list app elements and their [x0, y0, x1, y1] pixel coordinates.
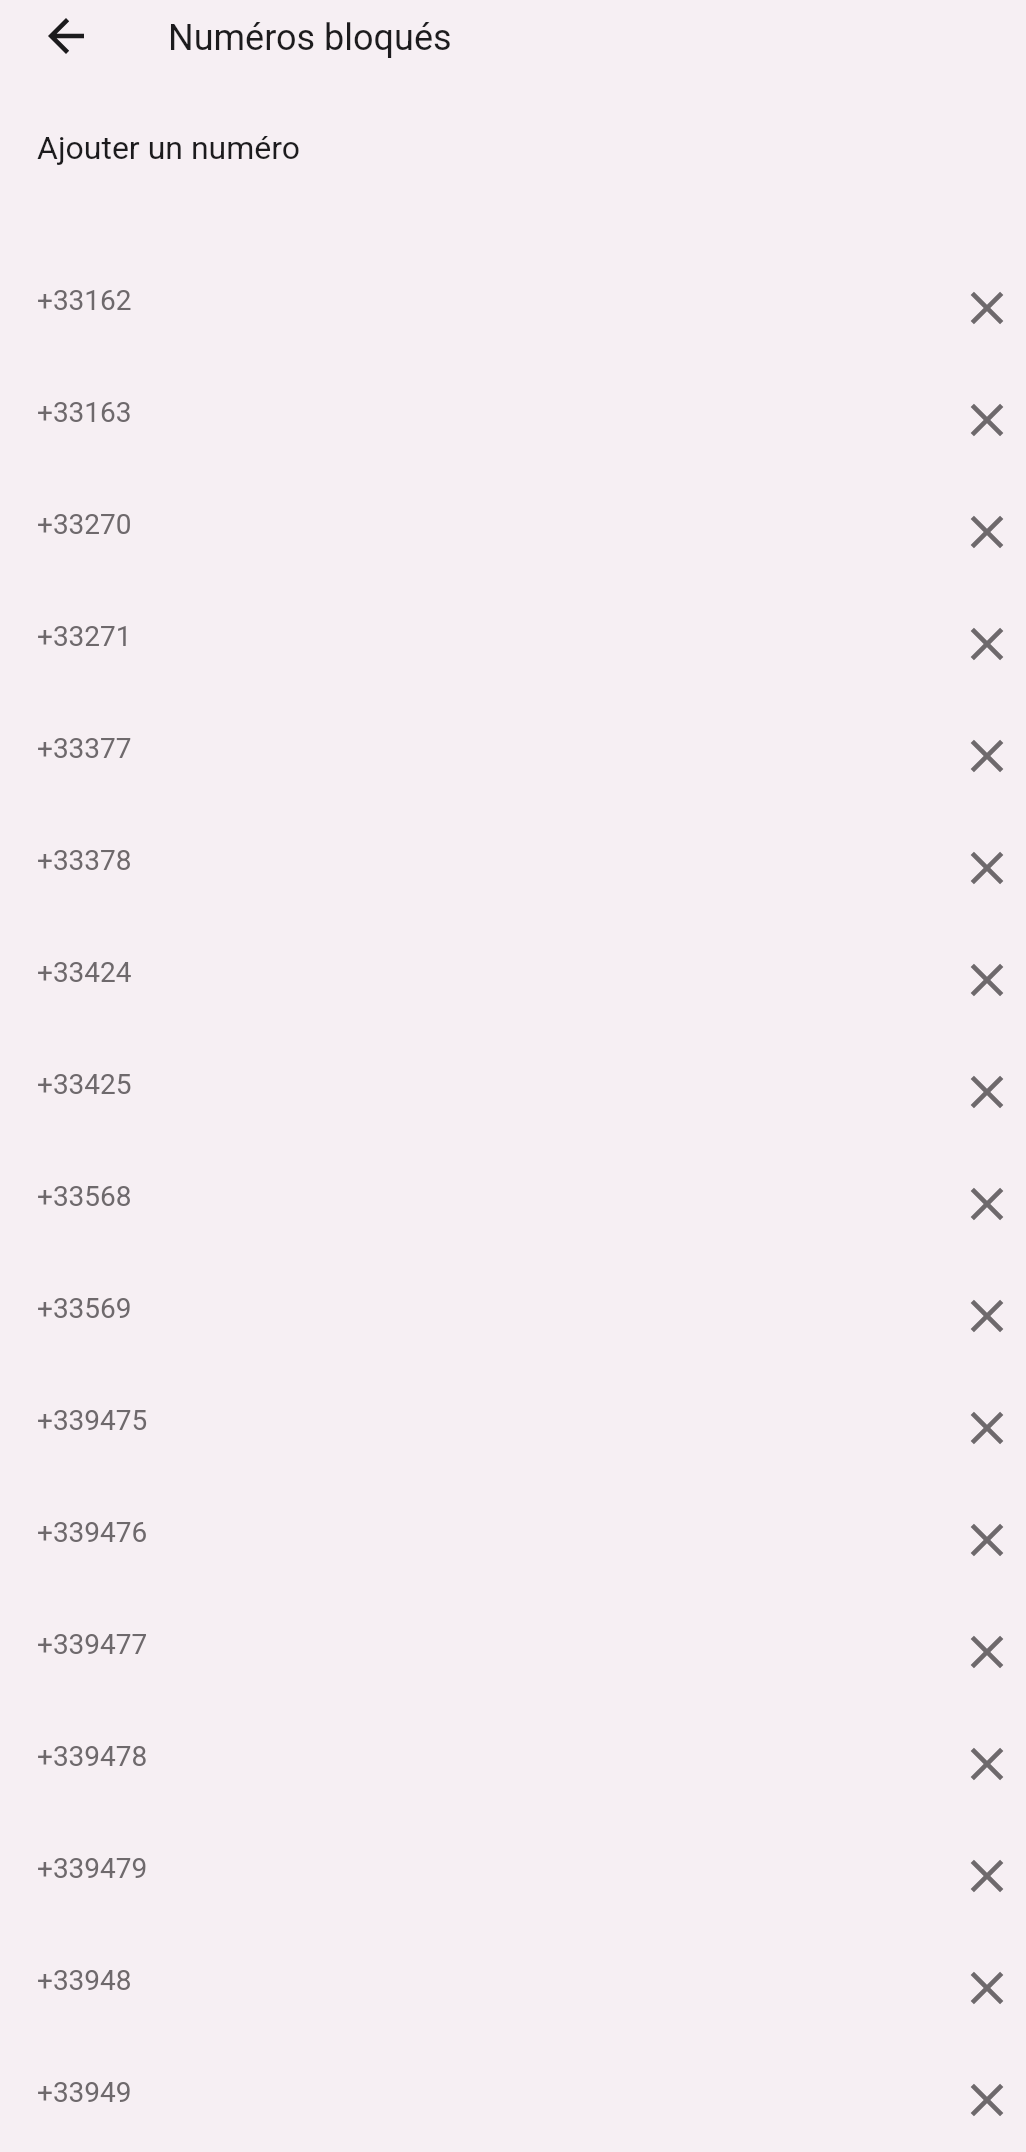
button[interactable]: +33568 — [0, 1148, 1026, 1260]
button[interactable]: +33569 — [0, 1260, 1026, 1372]
staticText: +339478 — [37, 1740, 148, 1773]
button[interactable]: +33377 — [0, 700, 1026, 812]
staticText: +33271 — [37, 620, 132, 653]
staticText: +33425 — [37, 1068, 132, 1101]
button[interactable]: +33270 — [0, 476, 1026, 588]
staticText: +33948 — [37, 1964, 132, 1997]
button[interactable]: +339477 — [0, 1596, 1026, 1708]
staticText: +33424 — [37, 956, 132, 989]
staticText: Ajouter un numéro — [37, 129, 301, 167]
staticText: +33569 — [37, 1292, 132, 1325]
button[interactable]: +33949 — [0, 2044, 1026, 2152]
button[interactable]: Débloquer +33949 — [959, 2072, 1015, 2128]
button[interactable]: Débloquer +33424 — [959, 952, 1015, 1008]
button[interactable]: Débloquer +33378 — [959, 840, 1015, 896]
button[interactable]: +33163 — [0, 364, 1026, 476]
button[interactable]: +33948 — [0, 1932, 1026, 2044]
staticText: +33378 — [37, 844, 132, 877]
button[interactable]: Débloquer +33377 — [959, 728, 1015, 784]
button[interactable]: Débloquer +339477 — [959, 1624, 1015, 1680]
staticText: +33568 — [37, 1180, 132, 1213]
staticText: +339477 — [37, 1628, 148, 1661]
staticText: +33377 — [37, 732, 132, 765]
button[interactable]: Débloquer +33162 — [959, 280, 1015, 336]
button[interactable]: Débloquer +33425 — [959, 1064, 1015, 1120]
staticText: +33162 — [37, 284, 132, 317]
staticText: +33949 — [37, 2076, 132, 2109]
button[interactable]: +33424 — [0, 924, 1026, 1036]
button[interactable]: Débloquer +33163 — [959, 392, 1015, 448]
staticText: +33163 — [37, 396, 132, 429]
button[interactable]: +33378 — [0, 812, 1026, 924]
button[interactable]: +33162 — [0, 252, 1026, 364]
button[interactable]: Débloquer +33948 — [959, 1960, 1015, 2016]
staticText: +339479 — [37, 1852, 148, 1885]
button[interactable]: +339479 — [0, 1820, 1026, 1932]
button[interactable]: +33271 — [0, 588, 1026, 700]
button[interactable]: +339476 — [0, 1484, 1026, 1596]
staticText: Numéros bloqués — [168, 17, 452, 59]
button[interactable]: Débloquer +339476 — [959, 1512, 1015, 1568]
button[interactable]: +339478 — [0, 1708, 1026, 1820]
button[interactable]: +33425 — [0, 1036, 1026, 1148]
button[interactable]: Débloquer +339475 — [959, 1400, 1015, 1456]
button[interactable]: Débloquer +33569 — [959, 1288, 1015, 1344]
button[interactable]: Retour — [39, 9, 93, 63]
staticText: +339476 — [37, 1516, 148, 1549]
staticText: +33270 — [37, 508, 132, 541]
button[interactable]: Débloquer +339479 — [959, 1848, 1015, 1904]
staticText: +339475 — [37, 1404, 148, 1437]
button[interactable]: Débloquer +33270 — [959, 504, 1015, 560]
button[interactable]: +339475 — [0, 1372, 1026, 1484]
button[interactable]: Ajouter un numéro — [0, 96, 1026, 252]
button[interactable]: Débloquer +33568 — [959, 1176, 1015, 1232]
button[interactable]: Débloquer +33271 — [959, 616, 1015, 672]
button[interactable]: Débloquer +339478 — [959, 1736, 1015, 1792]
